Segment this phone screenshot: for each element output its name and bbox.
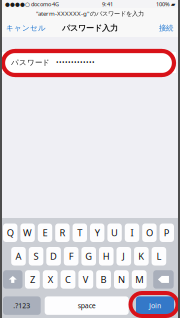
staticText: O	[146, 226, 153, 239]
button[interactable]: キャンセル	[0, 19, 50, 37]
button[interactable]: M	[132, 270, 147, 289]
staticText: C	[65, 273, 71, 286]
button[interactable]: space	[45, 296, 129, 315]
staticText: Q	[7, 226, 14, 239]
staticText: S	[33, 250, 38, 263]
button[interactable]: Shift	[3, 270, 22, 289]
staticText: "aterm-XXXXXX-g"のパスワードを入力	[36, 9, 144, 18]
button[interactable]: O	[142, 223, 157, 242]
staticText: Z	[30, 273, 35, 286]
button[interactable]: Delete	[153, 270, 174, 289]
button[interactable]: 接続	[155, 19, 180, 37]
staticText: N	[118, 273, 125, 286]
button[interactable]: K	[134, 247, 149, 265]
staticText: I	[130, 226, 133, 239]
button[interactable]: E	[38, 223, 52, 242]
button[interactable]: A	[11, 247, 26, 265]
button[interactable]: F	[64, 247, 78, 265]
staticText: .?123	[13, 301, 30, 310]
button[interactable]: H	[99, 247, 114, 265]
staticText: P	[164, 226, 170, 239]
staticText: Y	[95, 226, 100, 239]
staticText: パスワード入力	[62, 23, 118, 33]
button[interactable]: S	[29, 247, 43, 265]
staticText: E	[42, 226, 47, 239]
button[interactable]: X	[43, 270, 58, 289]
button[interactable]: Y	[90, 223, 104, 242]
staticText: キャンセル	[6, 23, 46, 33]
staticText: D	[50, 250, 57, 263]
staticText: 100% ▰	[156, 0, 175, 8]
button[interactable]: W	[20, 223, 35, 242]
button[interactable]: I	[125, 223, 139, 242]
staticText: W	[23, 226, 32, 239]
staticText: space	[78, 301, 96, 310]
staticText: J	[122, 250, 125, 263]
button[interactable]: N	[114, 270, 129, 289]
staticText: A	[15, 250, 21, 263]
button[interactable]: T	[73, 223, 87, 242]
staticText: 9:41	[102, 0, 113, 8]
staticText: R	[59, 226, 65, 239]
button[interactable]: .?123	[3, 296, 41, 315]
button[interactable]: G	[81, 247, 96, 265]
staticText: パスワード	[11, 58, 50, 67]
staticText: Join	[149, 301, 161, 310]
staticText: L	[156, 250, 161, 263]
staticText: K	[138, 250, 144, 263]
button[interactable]: B	[96, 270, 111, 289]
staticText: V	[83, 273, 89, 286]
button[interactable]: Q	[3, 223, 17, 242]
staticText: 接続	[159, 23, 173, 33]
button[interactable]: C	[61, 270, 75, 289]
staticText: T	[77, 226, 82, 239]
staticText: U	[111, 226, 118, 239]
button[interactable]: D	[46, 247, 61, 265]
staticText: F	[69, 250, 74, 263]
button[interactable]: P	[160, 223, 174, 242]
staticText: X	[48, 273, 53, 286]
staticText: ●●●●○ docomo 4G	[5, 0, 59, 8]
button[interactable]: Join	[136, 296, 174, 315]
staticText: H	[103, 250, 110, 263]
staticText: G	[85, 250, 92, 263]
button[interactable]: パスワード	[0, 52, 176, 73]
staticText: B	[101, 273, 107, 286]
staticText: M	[135, 273, 143, 286]
button[interactable]: Z	[25, 270, 40, 289]
button[interactable]: V	[78, 270, 93, 289]
staticText: •••••••••••••	[56, 58, 95, 67]
button[interactable]: L	[152, 247, 166, 265]
button[interactable]: R	[55, 223, 70, 242]
button[interactable]: U	[107, 223, 122, 242]
button[interactable]: J	[116, 247, 131, 265]
